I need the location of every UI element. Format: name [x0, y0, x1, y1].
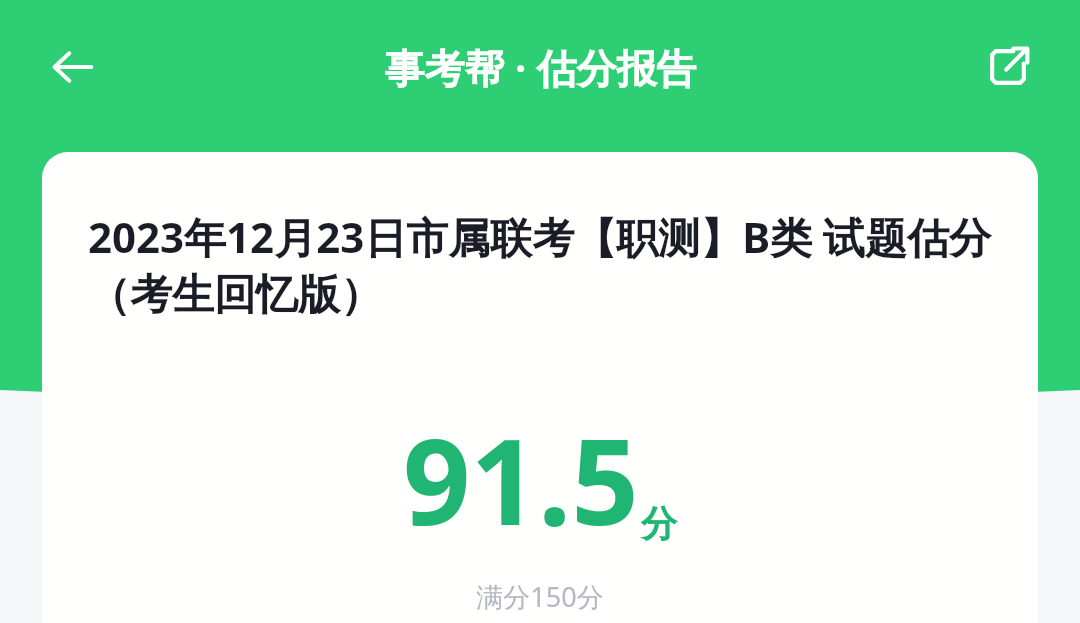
staticText: 2023年12月23日市属联考【职测】B类 试题估分（考生回忆版） [88, 208, 1008, 321]
staticText: 事考帮 · 估分报告 [384, 40, 697, 95]
button[interactable]: Back [34, 29, 110, 105]
staticText: 满分150分 [42, 578, 1038, 615]
staticText: 91.5 [403, 399, 639, 560]
button[interactable]: Share [972, 31, 1044, 103]
staticText: 分 [641, 501, 677, 546]
